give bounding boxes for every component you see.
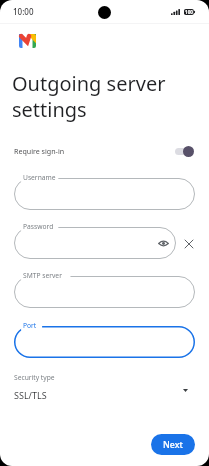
staticText: Next: [163, 439, 183, 451]
staticText: 10:00: [13, 6, 34, 17]
button[interactable]: SMTP server: [14, 276, 195, 308]
button[interactable]: Next: [151, 434, 195, 455]
button[interactable]: [175, 146, 194, 157]
staticText: Username: [23, 173, 56, 182]
button[interactable]: Username: [14, 178, 195, 210]
button[interactable]: Require sign-in: [0, 141, 209, 163]
staticText: Require sign-in: [14, 146, 65, 156]
button[interactable]: Security type: [0, 370, 209, 404]
button[interactable]: Port: [14, 326, 195, 358]
staticText: Outgoing server settings: [12, 70, 166, 123]
staticText: SSL/TLS: [14, 389, 47, 401]
staticText: Password: [23, 222, 54, 231]
staticText: Port: [23, 321, 37, 330]
button[interactable]: Show password: [157, 237, 170, 250]
staticText: Security type: [14, 373, 55, 382]
button[interactable]: Clear password: [182, 237, 195, 250]
button[interactable]: Password: [14, 227, 176, 259]
staticText: SMTP server: [23, 271, 62, 280]
staticText: 100: [185, 9, 193, 15]
